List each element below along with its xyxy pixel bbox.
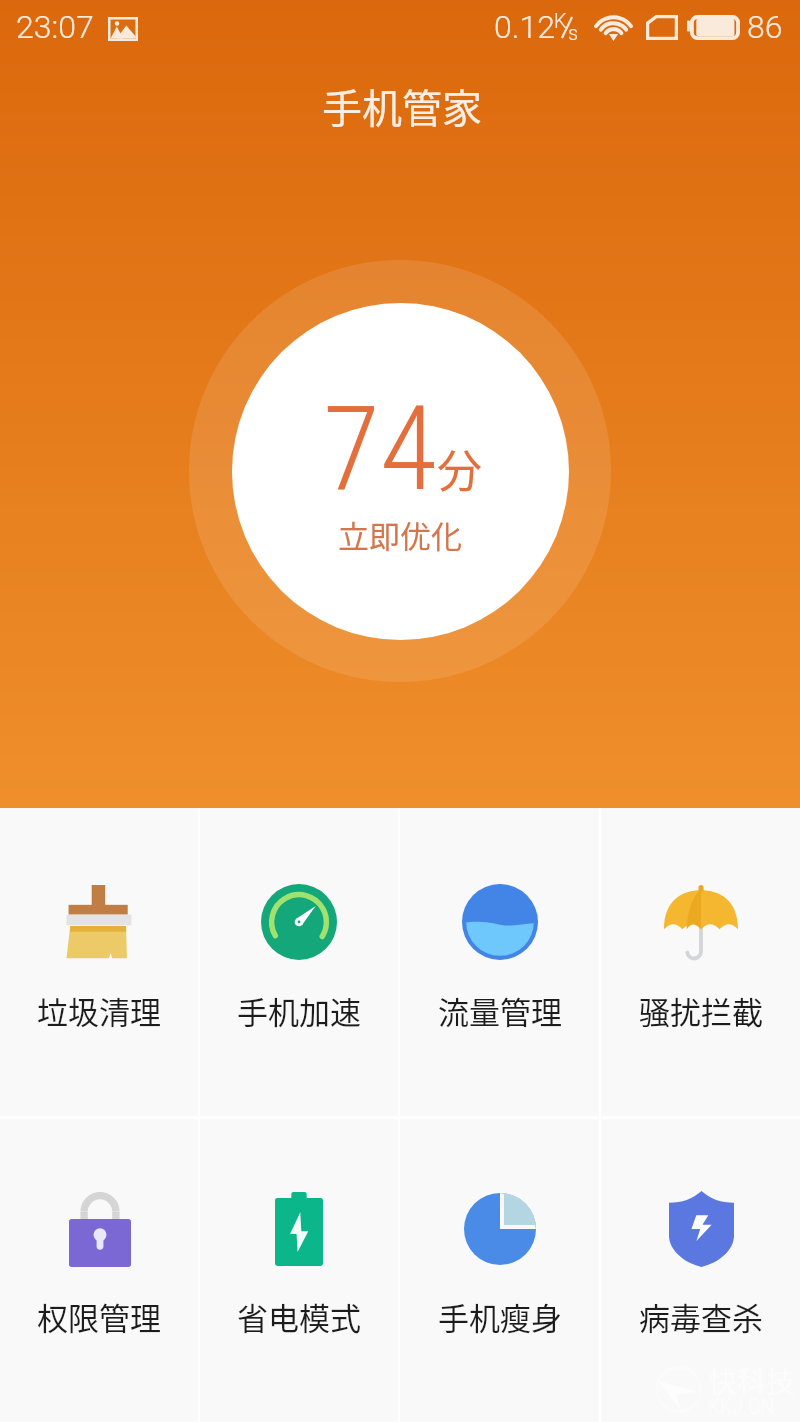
staticText: 垃圾清理 [37,988,161,1033]
staticText: 手机加速 [237,988,361,1033]
staticText: K [554,9,567,32]
staticText: 立即优化 [338,512,462,557]
staticText: 流量管理 [438,988,562,1033]
button[interactable]: 省电模式 [200,1119,398,1422]
staticText: 74 [323,380,437,517]
staticText: 分 [437,436,483,501]
button[interactable]: 74 [232,303,569,640]
button[interactable]: 病毒查杀 [601,1119,800,1422]
staticText: s [568,21,579,44]
staticText: 权限管理 [37,1294,161,1339]
staticText: 骚扰拦截 [639,988,763,1033]
staticText: 手机瘦身 [438,1294,562,1339]
other: Battery [687,15,740,40]
staticText: 省电模式 [237,1294,361,1339]
staticText: 0.12 [494,8,555,46]
button[interactable]: 手机加速 [200,808,398,1116]
button[interactable]: 流量管理 [400,808,599,1116]
button[interactable]: 骚扰拦截 [601,808,800,1116]
staticText: 手机管家 [322,77,482,135]
button[interactable]: 手机瘦身 [400,1119,599,1422]
button[interactable]: 垃圾清理 [0,808,198,1116]
staticText: 病毒查杀 [639,1294,763,1339]
button[interactable]: 权限管理 [0,1119,198,1422]
staticText: 23:07 [16,8,94,46]
other: SIM card [646,15,678,40]
other: Screenshot [108,17,138,41]
staticText: 86 [747,8,783,46]
other: Wi-Fi [595,14,632,41]
